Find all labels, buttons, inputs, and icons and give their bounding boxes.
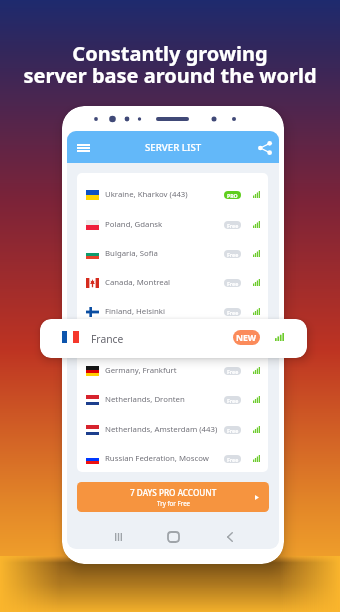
staticText: Poland, Gdansk xyxy=(105,219,163,230)
staticText: Try for Free xyxy=(157,499,191,507)
button[interactable]: Bulgaria, Sofia xyxy=(77,239,268,268)
button[interactable]: Recent apps xyxy=(109,528,127,546)
staticText: Free xyxy=(227,427,239,434)
button[interactable]: Free xyxy=(224,396,241,404)
button[interactable]: Free xyxy=(224,221,241,229)
button[interactable]: Free xyxy=(224,279,241,287)
button[interactable]: France xyxy=(40,319,307,358)
staticText: Finland, Helsinki xyxy=(105,306,165,317)
button[interactable]: Share xyxy=(256,139,273,156)
staticText: Constantly growing xyxy=(72,40,268,67)
button[interactable]: Poland, Gdansk xyxy=(77,210,268,239)
button[interactable]: PRO xyxy=(224,191,241,199)
button[interactable]: Russian Federation, Moscow xyxy=(77,444,268,472)
button[interactable]: Canada, Montreal xyxy=(77,268,268,297)
staticText: Netherlands, Dronten xyxy=(105,394,185,405)
staticText: Canada, Montreal xyxy=(105,277,171,288)
button[interactable]: Back xyxy=(221,528,239,546)
staticText: Netherlands, Amsterdam (443) xyxy=(105,424,218,435)
button[interactable]: Netherlands, Amsterdam (443) xyxy=(77,415,268,444)
staticText: Russian Federation, Moscow xyxy=(105,453,209,464)
staticText: Free xyxy=(227,368,239,375)
staticText: Bulgaria, Sofia xyxy=(105,248,158,259)
staticText: Free xyxy=(227,251,239,258)
button[interactable]: 7 DAYS PRO ACCOUNT xyxy=(77,482,269,512)
staticText: NEW xyxy=(236,332,257,344)
button[interactable]: Menu xyxy=(75,139,92,156)
staticText: PRO xyxy=(227,192,238,199)
staticText: Free xyxy=(227,280,239,287)
staticText: SERVER LIST xyxy=(145,141,202,154)
staticText: Free xyxy=(227,309,239,316)
button[interactable]: Ukraine, Kharkov (443) xyxy=(77,180,268,209)
button[interactable]: Netherlands, Dronten xyxy=(77,385,268,414)
button[interactable]: Free xyxy=(224,367,241,375)
staticText: Free xyxy=(227,397,239,404)
staticText: 7 DAYS PRO ACCOUNT xyxy=(130,487,217,498)
button[interactable]: NEW xyxy=(233,330,260,345)
staticText: Germany, Frankfurt xyxy=(105,365,177,376)
button[interactable]: Home xyxy=(164,528,182,546)
staticText: France xyxy=(91,332,124,346)
button[interactable]: Free xyxy=(224,250,241,258)
button[interactable]: Free xyxy=(224,426,241,434)
button[interactable]: Free xyxy=(224,455,241,463)
button[interactable]: Free xyxy=(224,308,241,316)
button[interactable]: Germany, Frankfurt xyxy=(77,356,268,385)
button[interactable]: Finland, Helsinki xyxy=(77,297,268,326)
staticText: Free xyxy=(227,456,239,463)
staticText: Free xyxy=(227,222,239,229)
staticText: Ukraine, Kharkov (443) xyxy=(105,189,188,200)
staticText: server base around the world xyxy=(23,62,317,89)
